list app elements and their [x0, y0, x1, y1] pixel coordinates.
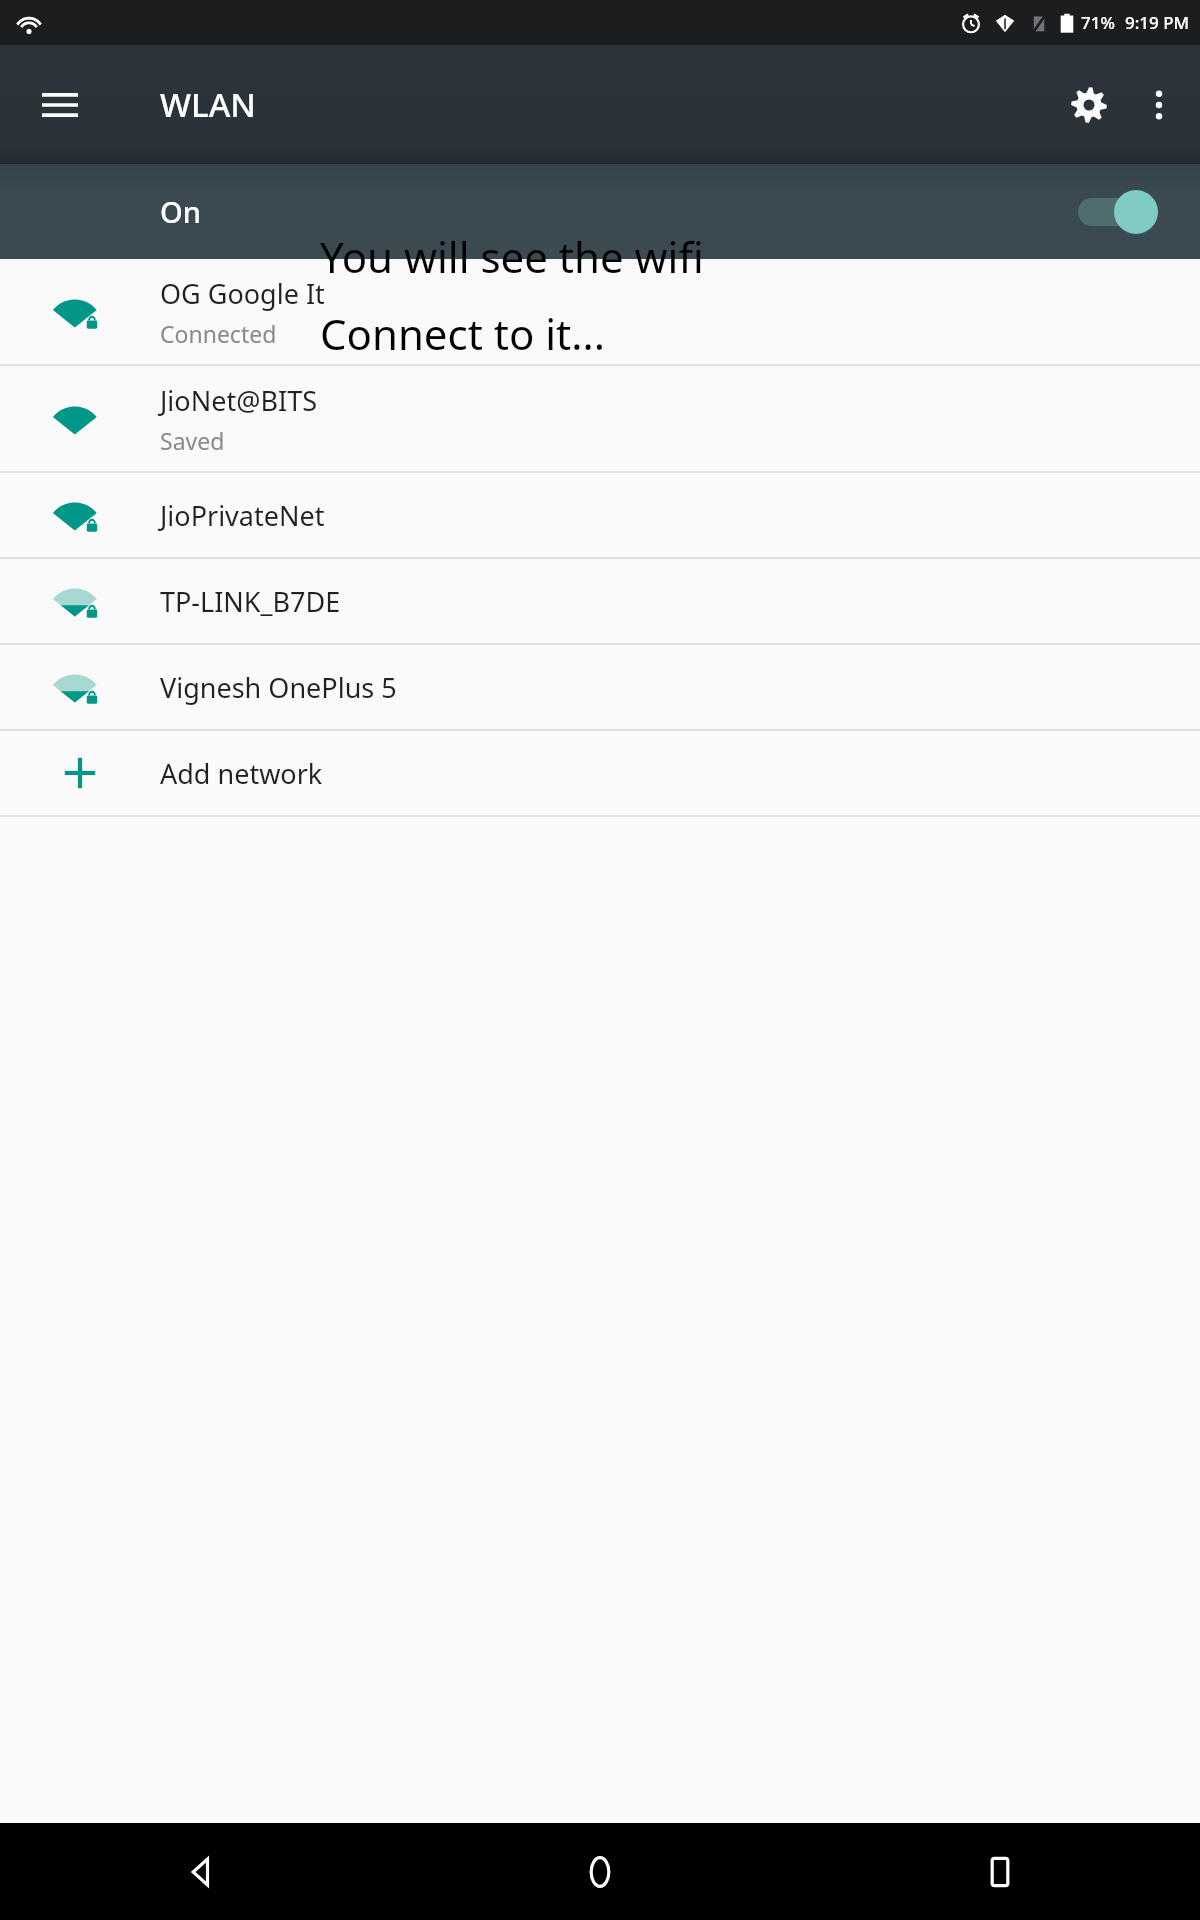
button[interactable]: JioPrivateNet: [0, 473, 1200, 557]
staticText: WLAN: [160, 82, 256, 127]
button[interactable]: Open navigation drawer: [30, 75, 90, 135]
staticText: OG Google It: [160, 275, 325, 312]
staticText: Connect to it...: [320, 305, 606, 362]
button[interactable]: Settings: [1054, 70, 1124, 140]
button[interactable]: Back: [0, 1823, 400, 1920]
button[interactable]: Home: [400, 1823, 800, 1920]
staticText: On: [160, 192, 201, 231]
button[interactable]: TP-LINK_B7DE: [0, 559, 1200, 643]
staticText: You will see the wifi: [320, 228, 704, 285]
button[interactable]: Recent apps: [800, 1823, 1200, 1920]
button[interactable]: OG Google It: [0, 259, 1200, 364]
staticText: Connected: [160, 318, 277, 349]
button[interactable]: On: [0, 164, 1200, 259]
button[interactable]: JioNet@BITS: [0, 366, 1200, 471]
button[interactable]: Add network: [0, 731, 1200, 815]
staticText: TP-LINK_B7DE: [160, 583, 341, 620]
staticText: 71%: [1081, 11, 1115, 34]
button[interactable]: Vignesh OnePlus 5: [0, 645, 1200, 729]
button[interactable]: More options: [1124, 70, 1194, 140]
staticText: Saved: [160, 425, 225, 456]
staticText: Add network: [160, 755, 323, 792]
staticText: 9:19 PM: [1125, 11, 1190, 34]
staticText: JioNet@BITS: [160, 382, 317, 419]
staticText: JioPrivateNet: [160, 497, 325, 534]
staticText: Vignesh OnePlus 5: [160, 669, 397, 706]
